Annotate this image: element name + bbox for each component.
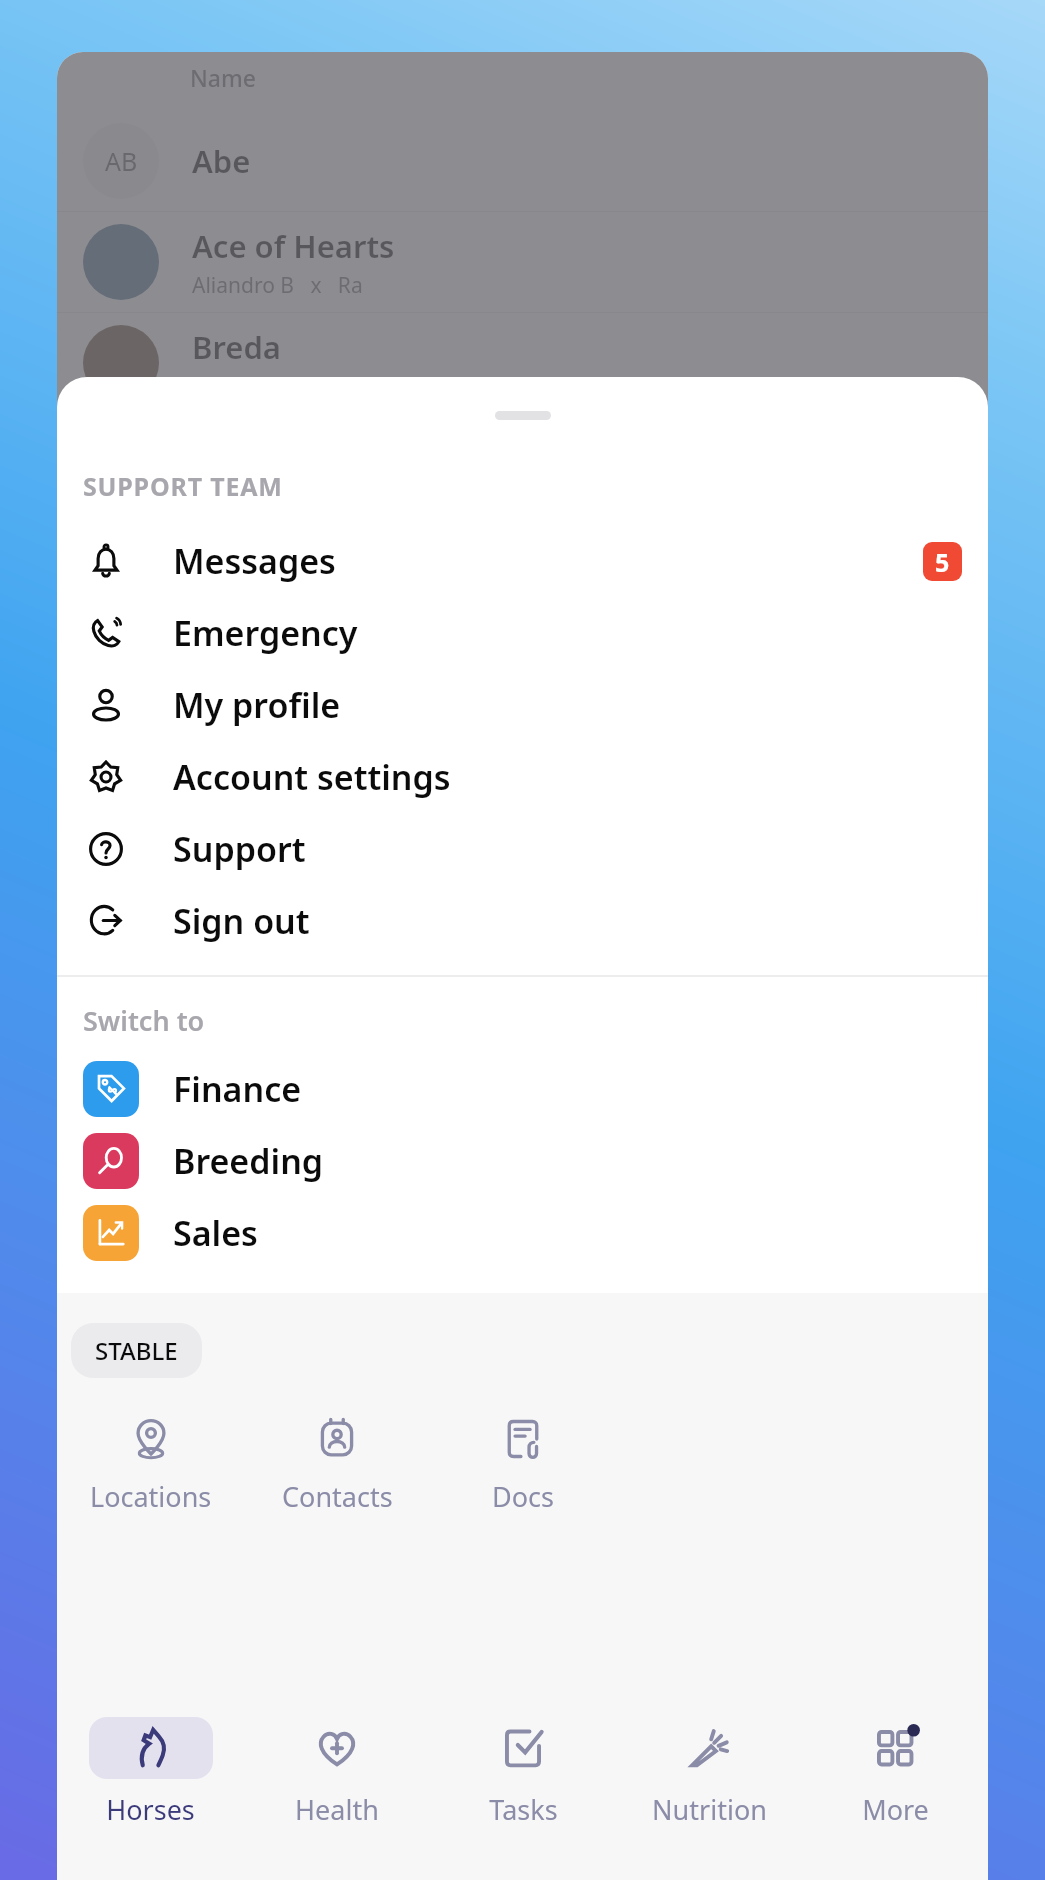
staticText: My profile — [173, 682, 341, 728]
staticText: Nutrition — [652, 1791, 767, 1828]
staticText: Account settings — [173, 754, 451, 800]
staticText: Balou Du Reventon x ... — [192, 372, 442, 401]
button[interactable]: Emergency — [57, 597, 988, 669]
button[interactable]: Contacts — [244, 1406, 430, 1521]
staticText: STABLE — [95, 1334, 178, 1367]
staticText: Ace of Hearts — [192, 225, 395, 267]
button[interactable]: Tasks — [430, 1717, 616, 1828]
staticText: Horses — [106, 1791, 195, 1828]
staticText: Aliandro B x Ra — [192, 271, 363, 300]
button[interactable]: More — [802, 1717, 988, 1828]
staticText: Switch to — [83, 1002, 205, 1039]
staticText: Health — [295, 1791, 379, 1828]
button[interactable]: STABLE — [71, 1323, 202, 1378]
button[interactable]: Finance — [57, 1053, 988, 1125]
staticText: More — [862, 1791, 929, 1828]
staticText: 5 — [935, 545, 950, 579]
staticText: Sign out — [173, 898, 310, 944]
staticText: Sales — [173, 1210, 258, 1256]
button[interactable]: My profile — [57, 669, 988, 741]
staticText: Docs — [492, 1478, 554, 1515]
button[interactable]: Sales — [57, 1197, 988, 1269]
staticText: Finance — [173, 1066, 302, 1112]
button[interactable]: Horses — [57, 1717, 244, 1828]
button[interactable]: Breeding — [57, 1125, 988, 1197]
staticText: Support — [173, 826, 306, 872]
button[interactable]: Messages — [57, 525, 988, 597]
button[interactable]: Account settings — [57, 741, 988, 813]
staticText: Tasks — [489, 1791, 558, 1828]
staticText: Breeding — [173, 1138, 324, 1184]
staticText: Messages — [173, 538, 336, 584]
button[interactable]: Nutrition — [616, 1717, 802, 1828]
staticText: Abe — [192, 140, 251, 182]
button[interactable]: Sign out — [57, 885, 988, 957]
button[interactable]: Support — [57, 813, 988, 885]
staticText: AB — [105, 144, 138, 178]
staticText: SUPPORT TEAM — [83, 469, 283, 503]
staticText: Breda — [192, 326, 281, 368]
staticText: Name — [190, 62, 256, 93]
button[interactable]: Locations — [57, 1406, 244, 1521]
staticText: Contacts — [282, 1478, 393, 1515]
staticText: Locations — [90, 1478, 212, 1515]
button[interactable]: Health — [244, 1717, 430, 1828]
button[interactable]: Docs — [430, 1406, 616, 1521]
staticText: Emergency — [173, 610, 358, 656]
